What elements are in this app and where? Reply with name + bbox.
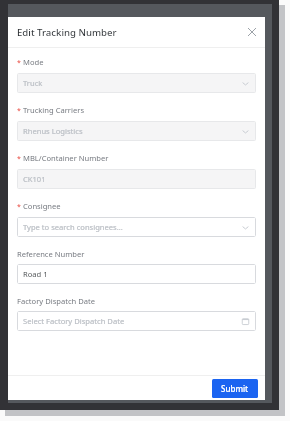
button[interactable]: Rhenus Logistics	[17, 121, 256, 141]
staticText: *	[17, 58, 21, 68]
staticText: Edit Tracking Number	[17, 26, 117, 39]
button[interactable]: CK101	[17, 169, 256, 189]
staticText: Submit	[221, 383, 249, 394]
button[interactable]: Submit	[212, 379, 258, 398]
button[interactable]: Road 1	[17, 264, 256, 284]
staticText: Consignee	[23, 201, 61, 211]
staticText: *	[17, 202, 21, 212]
staticText: Reference Number	[17, 249, 85, 259]
staticText: MBL/Container Number	[23, 153, 109, 163]
staticText: CK101	[23, 174, 46, 184]
staticText: *	[17, 106, 21, 116]
staticText: Mode	[23, 57, 44, 67]
staticText: *	[17, 154, 21, 164]
staticText: Truck	[23, 78, 43, 88]
button[interactable]: Type to search consignees...	[17, 217, 256, 237]
button[interactable]: Truck	[17, 73, 256, 93]
button[interactable]: Select Factory Dispatch Date	[17, 311, 256, 331]
staticText: Road 1	[23, 269, 48, 279]
staticText: Type to search consignees...	[23, 222, 123, 232]
staticText: Select Factory Dispatch Date	[23, 316, 125, 326]
staticText: Factory Dispatch Date	[17, 296, 96, 306]
button[interactable]: Close	[244, 24, 260, 40]
staticText: Trucking Carriers	[23, 105, 85, 115]
staticText: Rhenus Logistics	[23, 126, 83, 136]
